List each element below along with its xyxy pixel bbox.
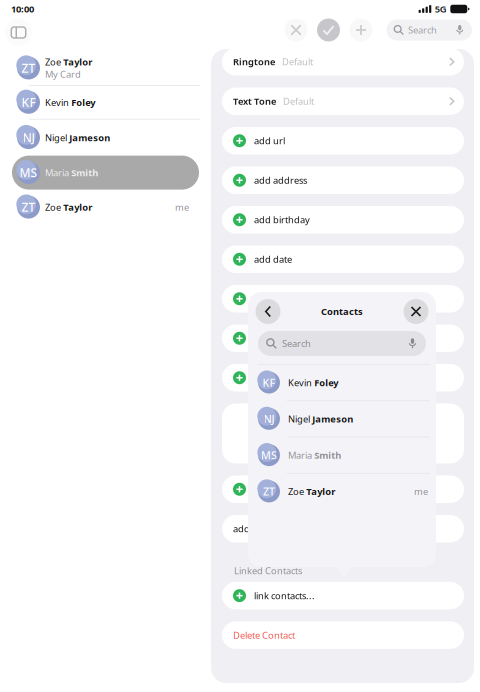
staticText: Ringtone: [233, 56, 275, 68]
staticText: Nigel: [45, 131, 67, 144]
staticText: Maria: [45, 166, 69, 179]
staticText: NJ: [22, 130, 34, 145]
button[interactable]: Delete Contact: [222, 621, 464, 649]
staticText: Taylor: [306, 485, 335, 498]
staticText: MS: [261, 448, 277, 462]
staticText: me: [175, 201, 189, 213]
staticText: ZT: [21, 60, 35, 76]
staticText: Text Tone: [233, 95, 276, 107]
staticText: ZT: [21, 199, 35, 215]
button[interactable]: ZT: [12, 190, 199, 225]
button[interactable]: Add: [345, 15, 377, 45]
staticText: add field: [254, 483, 292, 495]
staticText: me: [414, 485, 428, 498]
staticText: Maria: [288, 449, 312, 461]
staticText: Linked Contacts: [234, 564, 302, 577]
staticText: Foley: [314, 376, 338, 389]
button[interactable]: add social profile: [222, 324, 464, 352]
button[interactable]: ZT: [248, 474, 436, 509]
button[interactable]: Ringtone: [222, 48, 464, 75]
staticText: ZT: [263, 484, 275, 499]
button[interactable]: add url: [222, 127, 464, 154]
staticText: Default: [283, 95, 314, 107]
button[interactable]: Toggle Sidebar: [5, 19, 32, 46]
button[interactable]: link contacts...: [222, 582, 464, 609]
staticText: Zoe: [45, 201, 61, 213]
button[interactable]: add related name: [222, 285, 464, 312]
button[interactable]: ZT: [12, 51, 199, 85]
button[interactable]: NJ: [248, 401, 436, 437]
button[interactable]: add date: [222, 245, 464, 273]
staticText: 5G: [435, 3, 447, 15]
staticText: Default: [282, 56, 313, 68]
staticText: Foley: [71, 96, 95, 108]
button[interactable]: Close: [402, 297, 430, 325]
staticText: Taylor: [63, 56, 92, 68]
button[interactable]: add instant message: [222, 364, 464, 391]
staticText: Zoe: [288, 485, 304, 498]
staticText: Zoe: [45, 56, 61, 68]
staticText: KF: [262, 375, 275, 390]
button[interactable]: Search: [258, 331, 426, 356]
button[interactable]: Text Tone: [222, 87, 464, 115]
staticText: add to emergency contacts: [233, 523, 349, 535]
staticText: Jameson: [69, 131, 110, 144]
staticText: Contacts: [321, 305, 363, 318]
staticText: Smith: [314, 449, 341, 461]
staticText: My Card: [45, 68, 81, 80]
button[interactable]: add birthday: [222, 206, 464, 233]
button[interactable]: KF: [12, 86, 199, 119]
button[interactable]: Done: [312, 15, 345, 45]
staticText: Kevin: [45, 96, 69, 108]
staticText: Search: [282, 337, 311, 350]
staticText: NJ: [263, 412, 274, 426]
staticText: 10:00: [11, 3, 34, 15]
button[interactable]: add to emergency contacts: [222, 515, 464, 542]
button[interactable]: add field: [222, 475, 464, 503]
staticText: KF: [21, 94, 35, 110]
button[interactable]: KF: [248, 365, 436, 400]
staticText: add birthday: [254, 214, 310, 226]
button[interactable]: Back: [254, 297, 282, 325]
staticText: add instant message: [254, 372, 342, 384]
staticText: Notes: [336, 411, 361, 424]
staticText: Delete Contact: [233, 629, 295, 641]
staticText: add address: [254, 174, 307, 186]
staticText: Jameson: [312, 413, 353, 425]
staticText: Smith: [71, 166, 98, 179]
button[interactable]: NJ: [12, 120, 199, 156]
staticText: Nigel: [288, 413, 310, 425]
staticText: add related name: [254, 293, 330, 305]
staticText: link contacts...: [254, 589, 315, 602]
button[interactable]: MS: [12, 156, 199, 190]
staticText: add date: [254, 253, 292, 265]
button[interactable]: Notes: [222, 403, 464, 463]
staticText: Search: [408, 24, 437, 36]
staticText: add social profile: [254, 332, 327, 344]
button[interactable]: Search: [386, 19, 472, 40]
button[interactable]: MS: [248, 437, 436, 473]
staticText: add url: [254, 135, 285, 147]
button[interactable]: add address: [222, 166, 464, 194]
staticText: MS: [19, 165, 37, 180]
button[interactable]: Cancel: [280, 15, 312, 45]
staticText: Taylor: [63, 201, 92, 213]
staticText: Kevin: [288, 376, 312, 389]
